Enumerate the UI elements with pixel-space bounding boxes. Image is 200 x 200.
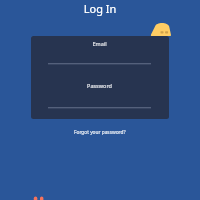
button[interactable]: Email	[48, 39, 151, 64]
staticText: Email	[48, 40, 151, 47]
staticText: Password	[48, 82, 151, 89]
button[interactable]: Forgot your password?	[70, 127, 130, 138]
button[interactable]: Password	[48, 81, 151, 108]
staticText: Log In	[0, 1, 200, 16]
staticText: Forgot your password?	[74, 129, 126, 136]
